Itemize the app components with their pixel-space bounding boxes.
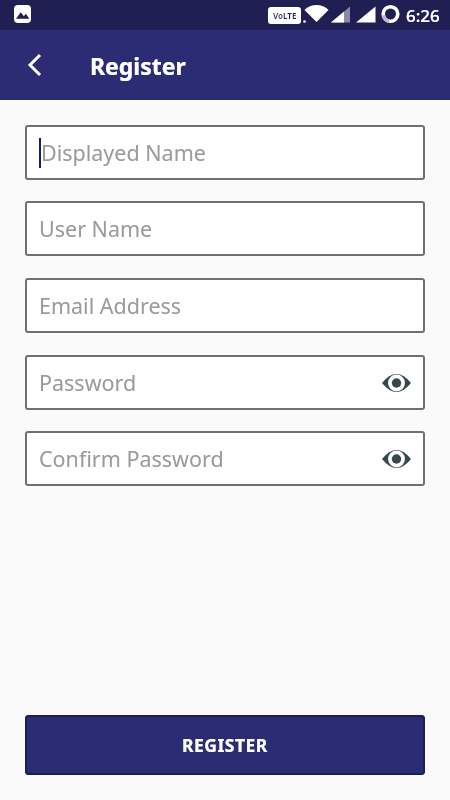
button[interactable]: Email Address <box>25 278 425 333</box>
staticText: Register <box>90 50 186 81</box>
staticText: REGISTER <box>182 733 268 757</box>
staticText: 6:26 <box>406 4 440 27</box>
button[interactable]: REGISTER <box>25 715 425 775</box>
staticText: User Name <box>39 214 411 243</box>
button[interactable]: User Name <box>25 201 425 256</box>
button[interactable] <box>13 43 57 87</box>
staticText: VoLTE <box>273 10 297 21</box>
staticText: Displayed Name <box>41 138 411 167</box>
staticText: Email Address <box>39 291 411 320</box>
staticText: Confirm Password <box>39 444 382 473</box>
staticText: Password <box>39 368 382 397</box>
button[interactable]: Confirm Password <box>25 431 425 486</box>
button[interactable]: Password <box>25 355 425 410</box>
button[interactable]: Displayed Name <box>25 125 425 180</box>
